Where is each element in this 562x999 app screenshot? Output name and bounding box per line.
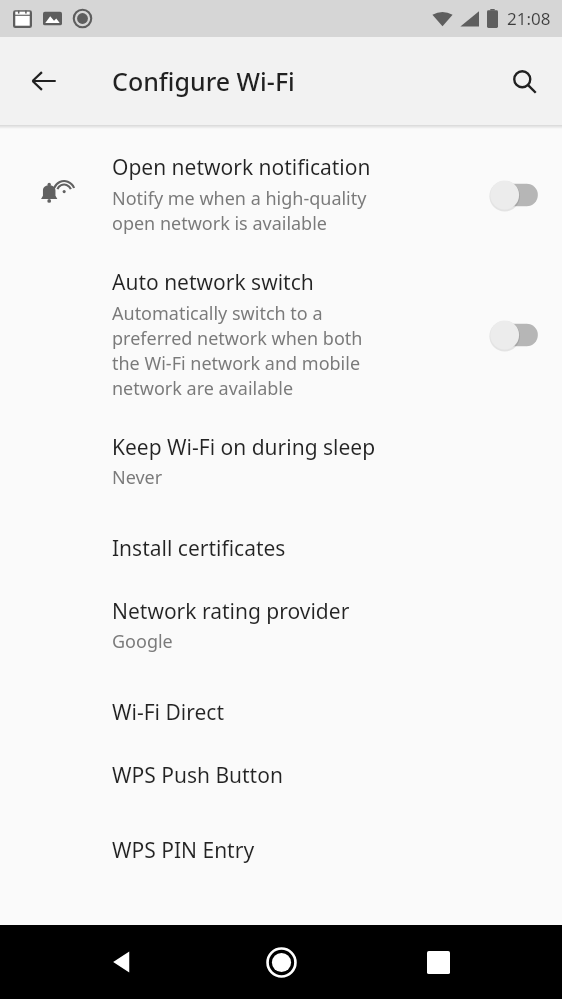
button[interactable]: Back [98, 938, 146, 986]
staticText: WPS Push Button [112, 761, 283, 790]
staticText: Automatically switch to a [112, 301, 323, 326]
staticText: Keep Wi-Fi on during sleep [112, 433, 376, 462]
button[interactable]: WPS Push Button [0, 751, 562, 814]
staticText: the Wi-Fi network and mobile [112, 351, 361, 376]
button[interactable]: Back [20, 57, 68, 105]
staticText: Google [112, 629, 173, 654]
staticText: Never [112, 465, 163, 490]
staticText: preferred network when both [112, 326, 363, 351]
button[interactable]: Wi-Fi Direct [0, 676, 562, 751]
staticText: open network is available [112, 211, 327, 236]
staticText: Install certificates [112, 534, 286, 563]
staticText: Auto network switch [112, 268, 314, 297]
staticText: network are available [112, 376, 294, 401]
button[interactable]: Recent apps [414, 938, 462, 986]
button[interactable]: Search [500, 57, 548, 105]
button[interactable]: Install certificates [0, 512, 562, 587]
button[interactable]: Auto network switch [0, 254, 562, 419]
staticText: Open network notification [112, 153, 371, 182]
button[interactable]: Toggle [481, 315, 539, 355]
staticText: WPS PIN Entry [112, 836, 255, 865]
staticText: Wi-Fi Direct [112, 698, 224, 727]
button[interactable]: WPS PIN Entry [0, 814, 562, 889]
button[interactable]: Home [257, 938, 305, 986]
button[interactable]: Toggle [481, 175, 539, 215]
staticText: Notify me when a high-quality [112, 186, 367, 211]
staticText: Configure Wi-Fi [112, 64, 295, 98]
button[interactable]: Network rating provider [0, 587, 562, 676]
button[interactable]: Open network notification [0, 129, 562, 254]
staticText: 21:08 [507, 7, 551, 30]
staticText: Network rating provider [112, 597, 350, 626]
button[interactable]: Keep Wi-Fi on during sleep [0, 419, 562, 512]
